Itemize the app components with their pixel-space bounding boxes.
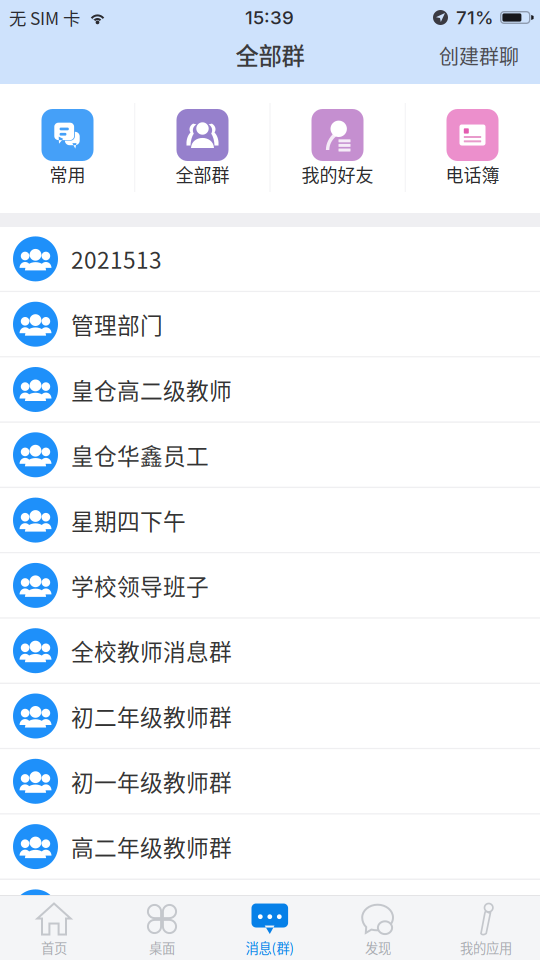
button[interactable]: 初二年级教师群 [0,684,540,749]
staticText: 桌面 [149,938,175,957]
staticText: 电话簿 [445,161,499,187]
button[interactable]: 初三年级教师群 [0,880,540,945]
button[interactable]: 首页 [0,896,108,960]
button[interactable]: 消息(群) [216,896,324,960]
button[interactable]: 全部群 [135,84,270,213]
button[interactable]: 常用 [0,84,135,213]
staticText: 2021513 [71,242,162,275]
button[interactable]: 2021513 [0,227,540,292]
staticText: 常用 [49,161,85,187]
staticText: 全校教师消息群 [71,634,232,667]
button[interactable]: 皇仓高二级教师 [0,358,540,423]
staticText: 15:39 [245,6,294,29]
staticText: 我的应用 [460,938,512,957]
button[interactable]: 创建群聊 [425,35,540,84]
button[interactable]: 初一年级教师群 [0,749,540,815]
button[interactable]: 我的应用 [432,896,540,960]
staticText: 初一年级教师群 [71,765,232,798]
staticText: 皇仓华鑫员工 [71,438,209,471]
button[interactable]: 皇仓华鑫员工 [0,423,540,488]
staticText: 发现 [365,938,391,957]
staticText: 初二年级教师群 [71,700,232,732]
button[interactable]: 高二年级教师群 [0,815,540,880]
staticText: 初三年级教师群 [71,895,232,928]
button[interactable]: 学校领导班子 [0,553,540,619]
staticText: 皇仓高二级教师 [71,373,232,406]
button[interactable]: 电话簿 [405,84,540,213]
staticText: 我的好友 [301,161,373,187]
button[interactable]: 全校教师消息群 [0,619,540,684]
button[interactable]: 发现 [324,896,432,960]
staticText: 学校领导班子 [71,569,209,602]
staticText: 消息(群) [245,938,294,957]
button[interactable]: 桌面 [108,896,216,960]
button[interactable]: 星期四下午 [0,488,540,553]
staticText: 管理部门 [71,308,163,341]
button[interactable]: 我的好友 [270,84,405,213]
button[interactable]: 管理部门 [0,292,540,358]
staticText: 首页 [41,938,67,957]
staticText: 全部群 [175,161,229,187]
staticText: 无 SIM 卡 [9,5,80,30]
staticText: 全部群 [235,38,304,71]
staticText: 星期四下午 [71,504,186,536]
staticText: 71% [456,6,494,29]
staticText: 高二年级教师群 [71,830,232,863]
staticText: 创建群聊 [439,41,519,70]
